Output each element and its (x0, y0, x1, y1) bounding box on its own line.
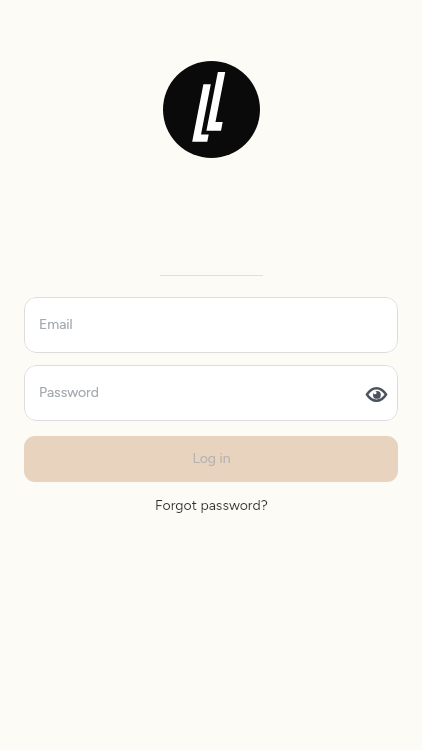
button[interactable]: Forgot password? (145, 493, 278, 518)
button[interactable]: Password (24, 365, 398, 421)
button[interactable]: Show password (359, 376, 393, 410)
staticText: Forgot password? (155, 497, 268, 514)
button[interactable]: Log in (24, 436, 398, 482)
staticText: Log in (192, 450, 231, 467)
staticText: Password (39, 384, 100, 401)
button[interactable]: Email (24, 297, 398, 353)
staticText: Email (39, 316, 73, 333)
